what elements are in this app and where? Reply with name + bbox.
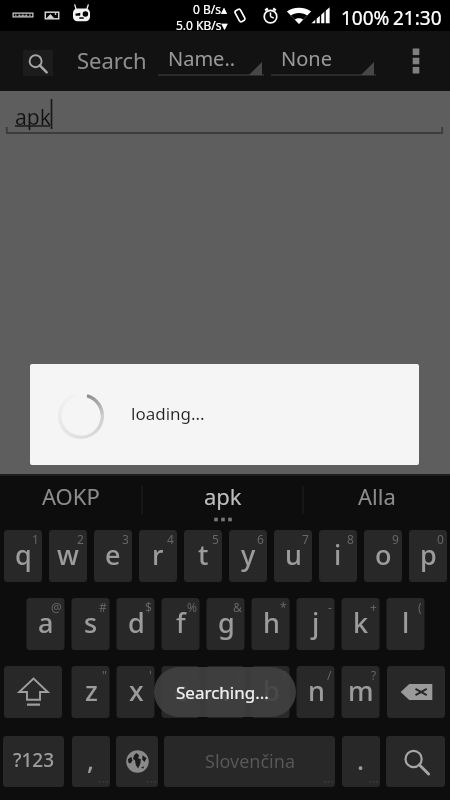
staticText: None <box>281 45 332 72</box>
staticText: AOKP <box>42 481 100 511</box>
staticText: l <box>402 604 410 641</box>
staticText: k <box>353 604 369 641</box>
staticText: t <box>198 536 209 573</box>
staticText: / <box>327 667 332 683</box>
button[interactable]: u <box>274 530 312 582</box>
staticText: n <box>308 672 325 709</box>
button[interactable]: x <box>117 666 155 718</box>
staticText: q <box>15 536 32 573</box>
staticText: g <box>218 604 235 641</box>
button[interactable]: d <box>117 598 155 650</box>
button[interactable]: w <box>49 530 87 582</box>
staticText: f <box>176 604 186 641</box>
button[interactable]: Slovenčina <box>164 736 335 787</box>
staticText: r <box>152 536 164 573</box>
button[interactable]: z <box>72 666 110 718</box>
staticText: ?123 <box>13 747 55 773</box>
staticText: 0 B/s▴ <box>193 1 228 17</box>
staticText: Name.. <box>168 45 236 72</box>
staticText: $ <box>145 599 152 615</box>
staticText: ' <box>149 667 152 683</box>
button[interactable]: c <box>162 666 200 718</box>
button[interactable]: More options <box>398 31 434 91</box>
staticText: apk <box>15 103 51 132</box>
button[interactable]: h <box>252 598 290 650</box>
button[interactable]: ?123 <box>3 736 64 787</box>
button[interactable]: n <box>297 666 335 718</box>
staticText: j <box>312 604 320 641</box>
button[interactable]: b <box>252 666 290 718</box>
staticText: * <box>280 599 287 615</box>
button[interactable]: f <box>162 598 200 650</box>
button[interactable]: apk <box>0 91 450 136</box>
staticText: Alla <box>358 481 396 511</box>
staticText: 5 <box>212 531 219 547</box>
button[interactable]: o <box>364 530 402 582</box>
staticText: 7 <box>302 531 309 547</box>
button[interactable]: Search <box>77 45 147 75</box>
button[interactable]: s <box>72 598 110 650</box>
staticText: 8 <box>347 531 354 547</box>
button[interactable]: q <box>4 530 42 582</box>
staticText: Searching... <box>176 681 269 704</box>
button[interactable]: AOKP <box>0 474 142 524</box>
staticText: 1 <box>32 531 39 547</box>
staticText: i <box>334 536 342 573</box>
button[interactable]: t <box>184 530 222 582</box>
button[interactable]: , <box>72 736 110 787</box>
staticText: & <box>233 599 242 615</box>
button[interactable]: g <box>207 598 245 650</box>
staticText: e <box>105 536 121 573</box>
button[interactable]: None <box>271 43 376 77</box>
staticText: o <box>375 536 392 573</box>
staticText: 6 <box>257 531 264 547</box>
staticText: , <box>87 742 95 777</box>
staticText: 0 <box>437 531 444 547</box>
button[interactable]: r <box>139 530 177 582</box>
staticText: apk <box>204 481 242 511</box>
button[interactable]: a <box>27 598 65 650</box>
staticText: 21:30 <box>393 5 442 31</box>
staticText: u <box>285 536 302 573</box>
staticText: @ <box>51 599 62 615</box>
staticText: # <box>99 599 107 615</box>
staticText: h <box>263 604 280 641</box>
staticText: % <box>187 599 197 615</box>
button[interactable]: Change language <box>116 736 158 787</box>
staticText: loading... <box>131 402 205 425</box>
button[interactable]: Name.. <box>158 43 264 77</box>
staticText: a <box>38 604 54 641</box>
staticText: ( <box>418 599 422 615</box>
staticText: c <box>174 672 188 709</box>
staticText: 4 <box>167 531 174 547</box>
staticText: - <box>328 599 332 615</box>
staticText: 9 <box>392 531 399 547</box>
button[interactable]: m <box>342 666 380 718</box>
staticText: s <box>84 604 98 641</box>
staticText: " <box>102 667 107 683</box>
button[interactable]: apk <box>142 474 303 524</box>
button[interactable]: Search <box>386 736 445 787</box>
button[interactable]: Alla <box>303 474 450 524</box>
button[interactable]: j <box>297 598 335 650</box>
staticText: + <box>370 599 377 615</box>
staticText: b <box>263 672 280 709</box>
button[interactable]: p <box>409 530 447 582</box>
staticText: 3 <box>122 531 129 547</box>
staticText: w <box>57 536 79 573</box>
staticText: Slovenčina <box>205 749 295 774</box>
staticText: ? <box>371 667 377 683</box>
button[interactable]: k <box>342 598 380 650</box>
button[interactable]: v <box>207 666 245 718</box>
button[interactable]: Shift <box>4 666 62 718</box>
button[interactable]: l <box>387 598 425 650</box>
button[interactable]: . <box>342 736 380 787</box>
button[interactable]: Search <box>23 50 53 76</box>
button[interactable]: i <box>319 530 357 582</box>
staticText: 2 <box>77 531 84 547</box>
button[interactable]: Backspace <box>387 666 445 718</box>
button[interactable]: e <box>94 530 132 582</box>
staticText: ! <box>283 667 287 683</box>
button[interactable]: y <box>229 530 267 582</box>
